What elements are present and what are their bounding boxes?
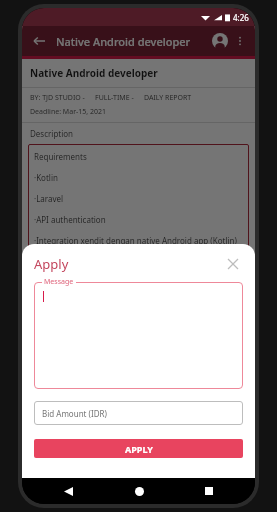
staticText: DAILY REPORT xyxy=(144,93,192,103)
button[interactable]: Bid Amount (IDR) xyxy=(34,401,243,425)
staticText: ·Integration xendit dengan native Androi… xyxy=(34,235,237,246)
staticText: 4:26 xyxy=(233,12,249,23)
staticText: APPLY xyxy=(125,443,153,455)
staticText: Bid Amount (IDR) xyxy=(42,408,107,419)
staticText: BY: TJD STUDIO - xyxy=(30,93,85,103)
button[interactable]: APPLY xyxy=(34,439,243,458)
button[interactable]: More options xyxy=(231,32,249,50)
button[interactable]: Back xyxy=(28,30,50,52)
button[interactable]: Recents xyxy=(199,481,219,501)
staticText: Native Android developer xyxy=(56,34,191,49)
staticText: Native Android developer xyxy=(30,66,158,80)
button[interactable]: Home xyxy=(129,481,149,501)
staticText: Description xyxy=(30,128,74,139)
staticText: ·API authentication xyxy=(34,214,106,225)
staticText: Requirements xyxy=(34,151,87,162)
staticText: FULL-TIME - xyxy=(95,93,134,103)
button[interactable]: Back xyxy=(58,481,78,501)
staticText: Message xyxy=(44,277,74,287)
button[interactable]: Close xyxy=(223,254,243,274)
staticText: Deadline: Mar-15, 2021 xyxy=(30,107,107,117)
staticText: ·Kotlin xyxy=(34,172,58,183)
staticText: Apply xyxy=(34,255,69,273)
button[interactable] xyxy=(34,282,243,389)
staticText: ·Laravel xyxy=(34,193,64,204)
button[interactable]: Account xyxy=(209,30,231,52)
